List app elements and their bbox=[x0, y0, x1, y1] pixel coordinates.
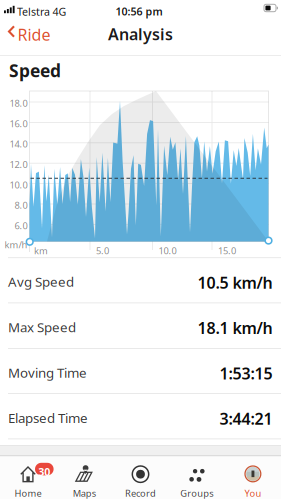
staticText: 6.0 bbox=[14, 219, 27, 232]
button[interactable]: Groups bbox=[169, 456, 225, 499]
staticText: 10.0 bbox=[158, 244, 176, 257]
staticText: Record bbox=[125, 487, 156, 499]
staticText: Groups bbox=[180, 487, 213, 499]
staticText: Maps bbox=[73, 487, 96, 499]
staticText: Home bbox=[15, 487, 42, 499]
staticText: km/h bbox=[4, 238, 27, 251]
staticText: 10:56 pm bbox=[115, 4, 162, 19]
staticText: Max Speed bbox=[8, 318, 76, 336]
staticText: Speed bbox=[9, 59, 61, 82]
staticText: 15.0 bbox=[218, 244, 236, 257]
staticText: 18.1 km/h bbox=[197, 317, 272, 338]
staticText: 30 bbox=[38, 465, 50, 479]
staticText: 10.5 km/h bbox=[197, 272, 272, 293]
staticText: 16.0 bbox=[9, 117, 27, 130]
staticText: 5.0 bbox=[96, 244, 109, 257]
staticText: 4G bbox=[52, 5, 66, 19]
staticText: 3:44:21 bbox=[219, 408, 272, 429]
staticText: 12.0 bbox=[9, 158, 27, 171]
button[interactable]: Record bbox=[112, 456, 169, 499]
button[interactable]: Ride bbox=[4, 21, 281, 499]
staticText: 1:53:15 bbox=[219, 363, 272, 384]
staticText: Moving Time bbox=[8, 364, 87, 381]
staticText: 18.0 bbox=[9, 97, 27, 109]
staticText: km bbox=[34, 244, 48, 257]
staticText: 10.0 bbox=[9, 179, 27, 191]
staticText: Analysis bbox=[108, 23, 173, 45]
staticText: Elapsed Time bbox=[8, 409, 88, 427]
staticText: You bbox=[244, 487, 261, 499]
staticText: Telstra bbox=[17, 5, 50, 19]
staticText: 8.0 bbox=[14, 199, 27, 211]
staticText: Avg Speed bbox=[8, 273, 74, 290]
staticText: Ride bbox=[17, 24, 50, 45]
button[interactable]: Maps bbox=[56, 456, 112, 499]
button[interactable]: You bbox=[225, 456, 281, 499]
button[interactable]: 30 bbox=[0, 456, 56, 499]
staticText: 14.0 bbox=[9, 138, 27, 150]
